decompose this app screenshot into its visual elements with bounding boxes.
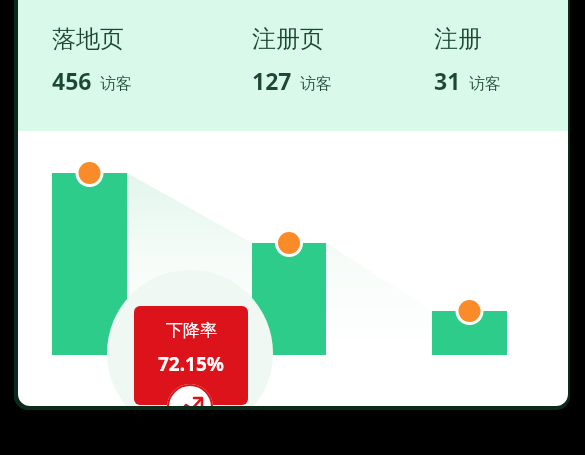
button[interactable]: 注册 [434, 24, 509, 96]
button[interactable]: 注册页 [252, 24, 340, 96]
staticText: 注册页 [252, 24, 324, 54]
staticText: 访客 [469, 74, 501, 94]
button[interactable]: 下降率 [134, 306, 248, 405]
staticText: 127 [252, 65, 292, 96]
staticText: 落地页 [52, 24, 124, 54]
staticText: 31 [434, 65, 461, 96]
staticText: 72.15% [158, 351, 224, 377]
button[interactable]: 落地页 [52, 24, 140, 96]
staticText: 456 [52, 65, 92, 96]
staticText: 访客 [300, 74, 332, 94]
button[interactable]: Trend details [167, 384, 213, 406]
staticText: 注册 [434, 24, 482, 54]
staticText: 访客 [100, 74, 132, 94]
staticText: 下降率 [166, 320, 217, 341]
